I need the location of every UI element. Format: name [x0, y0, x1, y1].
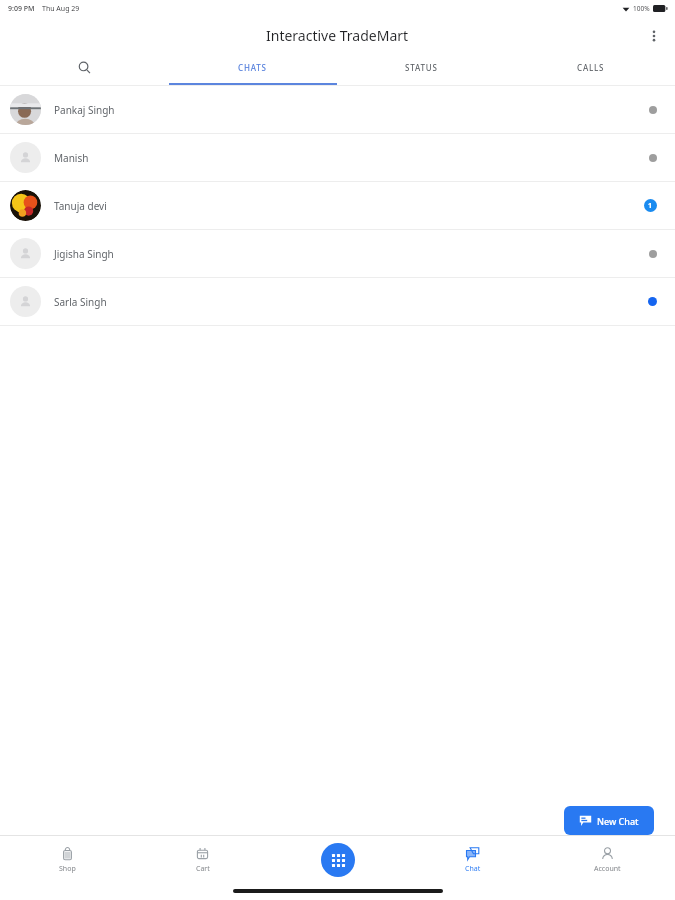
button[interactable]: Manish [0, 134, 675, 181]
staticText: Cart [196, 864, 210, 874]
button[interactable]: CALLS [506, 54, 675, 85]
staticText: 9:09 PM [8, 4, 35, 14]
staticText: Shop [59, 864, 76, 874]
button[interactable]: Shop [0, 835, 135, 885]
button[interactable]: STATUS [337, 54, 506, 85]
button[interactable]: CHATS [168, 54, 337, 85]
staticText: Sarla Singh [54, 295, 107, 309]
button[interactable]: Cart [135, 835, 270, 885]
button[interactable]: Apps [270, 835, 405, 885]
button[interactable]: Account [540, 835, 675, 885]
button[interactable]: Chat [405, 835, 540, 885]
staticText: Interactive TradeMart [266, 26, 409, 45]
button[interactable]: New Chat [564, 806, 654, 835]
button[interactable]: Jigisha Singh [0, 230, 675, 277]
button[interactable]: Tanuja devi [0, 182, 675, 229]
staticText: Pankaj Singh [54, 103, 115, 117]
staticText: Thu Aug 29 [42, 4, 80, 14]
staticText: Tanuja devi [54, 199, 107, 213]
staticText: Jigisha Singh [54, 247, 114, 261]
staticText: Manish [54, 151, 89, 165]
button[interactable]: More options [637, 19, 671, 53]
staticText: Chat [465, 864, 481, 874]
button[interactable]: Pankaj Singh [0, 86, 675, 133]
staticText: STATUS [405, 62, 438, 73]
staticText: 1 [648, 201, 653, 211]
staticText: New Chat [597, 815, 639, 827]
button[interactable]: Sarla Singh [0, 278, 675, 325]
staticText: Account [594, 864, 621, 874]
staticText: 100% [633, 4, 650, 13]
staticText: CHATS [238, 62, 267, 73]
button[interactable]: Search [0, 54, 168, 85]
staticText: CALLS [577, 62, 605, 73]
